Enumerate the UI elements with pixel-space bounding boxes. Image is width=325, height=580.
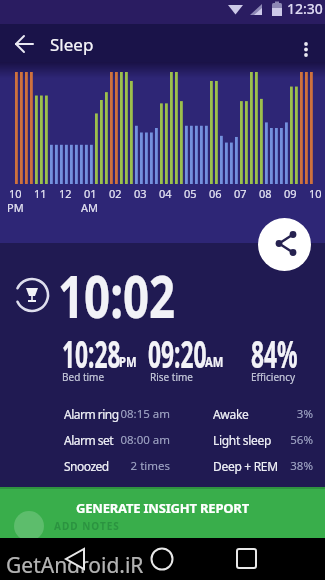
staticText: GENERATE INSIGHT REPORT (76, 499, 249, 515)
staticText: 10 (9, 186, 22, 198)
staticText: 02 (109, 186, 122, 198)
staticText: Rise time (150, 370, 194, 384)
staticText: 2 times (108, 458, 170, 474)
staticText: 06 (209, 186, 222, 198)
staticText: 09 (284, 186, 297, 198)
staticText: 09:20 (148, 327, 207, 379)
staticText: ADD NOTES (54, 519, 120, 533)
staticText: Alarm ring (64, 406, 119, 422)
staticText: 12 (59, 186, 72, 198)
staticText: 84% (251, 327, 298, 379)
staticText: 12:30 (287, 0, 323, 18)
staticText: 11 (34, 186, 47, 198)
staticText: 08:15 am (108, 406, 170, 422)
staticText: Light sleep (213, 432, 272, 448)
staticText: Alarm set (64, 432, 114, 448)
staticText: 10:28 (62, 327, 121, 379)
staticText: 3% (247, 406, 313, 422)
staticText: 08:00 am (108, 432, 170, 448)
staticText: Deep + REM (213, 458, 278, 474)
staticText: PM (119, 351, 137, 371)
staticText: 05 (184, 186, 197, 198)
staticText: AM (205, 351, 224, 371)
staticText: Awake (213, 406, 249, 422)
staticText: Efficiency (251, 370, 296, 384)
staticText: 04 (159, 186, 172, 198)
staticText: 10 (309, 186, 322, 198)
staticText: Snoozed (64, 458, 109, 474)
staticText: 56% (247, 432, 313, 448)
staticText: 08 (259, 186, 272, 198)
staticText: 03 (134, 186, 147, 198)
staticText: 10:02 (58, 254, 176, 336)
staticText: GetAndroid.iR (6, 551, 144, 580)
staticText: 38% (247, 458, 313, 474)
staticText: PM (7, 200, 24, 212)
staticText: Sleep (50, 33, 94, 56)
staticText: Bed time (62, 370, 105, 384)
staticText: 07 (234, 186, 247, 198)
staticText: AM (81, 200, 99, 212)
staticText: 01 (84, 186, 97, 198)
